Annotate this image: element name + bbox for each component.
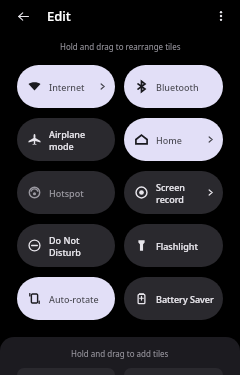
- button[interactable]: Flashlight: [124, 224, 223, 267]
- button[interactable]: Battery Saver: [124, 277, 223, 320]
- staticText: Bluetooth: [156, 81, 199, 93]
- button[interactable]: Home: [124, 118, 223, 161]
- staticText: Do Not Disturb: [49, 234, 107, 258]
- staticText: Internet: [49, 81, 85, 93]
- button[interactable]: Back: [12, 5, 34, 27]
- staticText: Hotspot: [49, 187, 84, 199]
- button[interactable]: More options: [209, 4, 233, 28]
- button[interactable]: Screen record: [124, 171, 223, 214]
- button[interactable]: Hotspot: [17, 171, 115, 214]
- button[interactable]: Bluetooth: [124, 65, 223, 108]
- staticText: Home: [156, 134, 182, 146]
- button[interactable]: Do Not Disturb: [17, 224, 115, 267]
- staticText: Auto-rotate: [49, 293, 99, 305]
- staticText: Battery Saver: [156, 293, 214, 305]
- staticText: Edit: [47, 7, 71, 25]
- button[interactable]: Airplane mode: [17, 118, 115, 161]
- button[interactable]: Internet: [17, 65, 115, 108]
- staticText: Flashlight: [156, 240, 198, 252]
- staticText: Hold and drag to add tiles: [71, 348, 169, 359]
- staticText: Hold and drag to rearrange tiles: [60, 41, 181, 52]
- staticText: Screen record: [156, 181, 206, 205]
- staticText: Airplane mode: [49, 128, 107, 152]
- button[interactable]: Auto-rotate: [17, 277, 115, 320]
